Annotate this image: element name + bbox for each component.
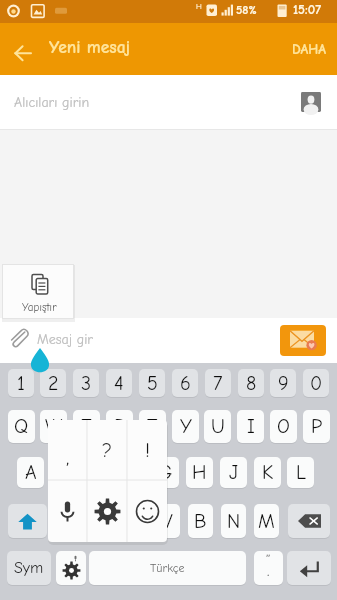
button[interactable]: M	[254, 504, 279, 538]
staticText: DAHA	[292, 41, 327, 57]
staticText: 58%	[236, 3, 257, 17]
button[interactable]: 2	[40, 369, 66, 397]
staticText: 0	[310, 372, 323, 395]
button[interactable]: 7	[205, 369, 231, 397]
button[interactable]: Türkçe	[89, 551, 246, 585]
button[interactable]: K	[254, 457, 281, 488]
button[interactable]: 3	[73, 369, 99, 397]
staticText: S	[59, 461, 71, 484]
staticText: A	[25, 461, 37, 484]
button[interactable]: 4	[106, 369, 132, 397]
button[interactable]: 9	[270, 369, 296, 397]
staticText: J	[229, 461, 239, 484]
staticText: L	[296, 461, 306, 484]
button[interactable]: Sym	[7, 551, 51, 585]
button[interactable]: Yapıştır	[3, 265, 73, 318]
staticText: O	[277, 415, 290, 438]
button[interactable]: Keyboard settings	[87, 480, 127, 542]
staticText: M	[258, 510, 275, 533]
button[interactable]: I	[237, 410, 264, 443]
button[interactable]: C	[122, 504, 147, 538]
staticText: H	[196, 2, 202, 11]
button[interactable]: L	[287, 457, 314, 488]
button[interactable]: B	[188, 504, 213, 538]
button[interactable]: N	[221, 504, 246, 538]
staticText: Z	[62, 510, 74, 533]
staticText: B	[194, 510, 207, 533]
button[interactable]: J	[220, 457, 247, 488]
button[interactable]: T	[139, 410, 166, 443]
staticText: Q	[14, 415, 29, 438]
staticText: 3	[81, 372, 92, 395]
staticText: W	[45, 415, 63, 438]
button[interactable]: DAHA	[282, 30, 335, 68]
staticText: 9	[278, 372, 289, 395]
staticText: Mesaj gir	[37, 331, 93, 347]
button[interactable]: Q	[8, 410, 35, 443]
staticText: D	[92, 461, 105, 484]
staticText: F	[127, 461, 139, 484]
button[interactable]: Attach file	[6, 327, 32, 353]
button[interactable]: R	[106, 410, 133, 443]
staticText: R	[114, 415, 126, 438]
staticText: 1	[17, 372, 25, 395]
button[interactable]: Emoji	[127, 480, 167, 542]
button[interactable]: Alıcıları girin	[0, 75, 337, 129]
button[interactable]: G	[152, 457, 179, 488]
button[interactable]: U	[204, 410, 231, 443]
staticText: 8	[246, 372, 257, 395]
staticText: 6	[180, 372, 191, 395]
staticText: Türkçe	[150, 561, 185, 575]
button[interactable]: H	[186, 457, 213, 488]
button[interactable]: F	[119, 457, 146, 488]
staticText: I	[247, 415, 255, 438]
button[interactable]: 1	[8, 369, 34, 397]
staticText: V	[162, 510, 173, 533]
button[interactable]: 5	[139, 369, 165, 397]
staticText: Y	[180, 415, 192, 438]
button[interactable]: V	[155, 504, 180, 538]
button[interactable]: W	[40, 410, 67, 443]
button[interactable]: ”	[254, 551, 283, 585]
button[interactable]: Back	[0, 27, 44, 71]
button[interactable]: P	[303, 410, 330, 443]
button[interactable]: Shift	[8, 504, 47, 538]
button[interactable]: Send message	[280, 325, 326, 356]
button[interactable]: D	[85, 457, 112, 488]
staticText: K	[262, 461, 274, 484]
button[interactable]: S	[51, 457, 78, 488]
button[interactable]: ?	[87, 420, 127, 480]
staticText: U	[211, 415, 225, 438]
button[interactable]: Keyboard settings	[56, 551, 86, 585]
staticText: E	[80, 415, 93, 438]
button[interactable]: Z	[55, 504, 80, 538]
button[interactable]: O	[270, 410, 297, 443]
staticText: ”	[266, 552, 271, 568]
staticText: N	[227, 510, 241, 533]
staticText: 5	[147, 372, 158, 395]
button[interactable]: 6	[172, 369, 198, 397]
staticText: 4	[114, 372, 124, 395]
staticText: ?	[102, 439, 113, 462]
button[interactable]: Voice input	[48, 480, 87, 542]
button[interactable]: Y	[172, 410, 199, 443]
staticText: X	[95, 510, 109, 533]
staticText: .	[267, 562, 270, 580]
button[interactable]: E	[73, 410, 100, 443]
button[interactable]: Enter	[287, 551, 331, 585]
button[interactable]: Choose contacts	[295, 86, 327, 118]
button[interactable]: 8	[238, 369, 264, 397]
staticText: Yapıştır	[22, 301, 57, 314]
button[interactable]: A	[17, 457, 44, 488]
button[interactable]: ,	[48, 420, 87, 480]
staticText: 2	[48, 372, 59, 395]
staticText: P	[311, 415, 323, 438]
button[interactable]: 0	[303, 369, 329, 397]
staticText: Yeni mesaj	[49, 37, 131, 57]
staticText: Sym	[14, 559, 44, 577]
button[interactable]: !	[127, 420, 167, 480]
button[interactable]: X	[89, 504, 114, 538]
button[interactable]: Backspace	[288, 504, 330, 538]
staticText: !	[145, 439, 150, 462]
staticText: 7	[213, 372, 223, 395]
